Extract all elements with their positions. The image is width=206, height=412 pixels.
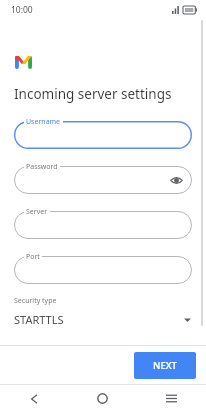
staticText: Password — [26, 162, 58, 172]
staticText: Security type — [14, 296, 57, 306]
button[interactable]: Server — [14, 205, 192, 239]
button[interactable]: Password — [14, 160, 192, 194]
button[interactable]: Show password — [169, 173, 183, 187]
button[interactable]: Security type — [14, 296, 192, 327]
staticText: Username — [26, 117, 61, 127]
staticText: Incoming server settings — [14, 85, 172, 103]
staticText: Server — [26, 207, 48, 217]
staticText: NEXT — [153, 359, 177, 372]
button[interactable]: Back — [0, 385, 68, 412]
button[interactable]: Port — [14, 250, 192, 284]
staticText: 10:00 — [11, 4, 33, 16]
staticText: Port — [26, 252, 40, 262]
button[interactable]: Recent apps — [137, 385, 206, 412]
button[interactable]: Home — [68, 385, 137, 412]
button[interactable]: Username — [14, 115, 192, 149]
staticText: STARTTLS — [14, 312, 184, 327]
button[interactable]: NEXT — [134, 352, 196, 379]
